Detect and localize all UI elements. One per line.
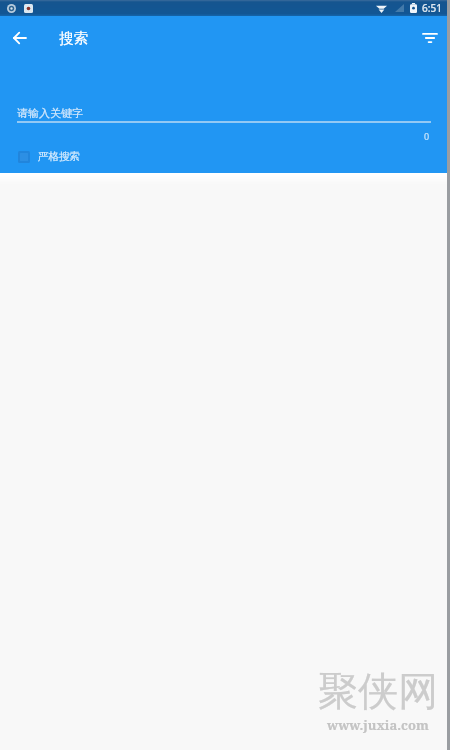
staticText: 请输入关键字: [17, 106, 83, 120]
staticText: 0: [424, 130, 430, 142]
staticText: www.juxia.com: [327, 716, 429, 734]
button[interactable]: 严格搜索: [10, 142, 88, 171]
button[interactable]: Filter: [414, 22, 446, 54]
staticText: 6:51: [422, 1, 442, 15]
button[interactable]: Search keyword input: [17, 94, 431, 123]
staticText: 严格搜索: [38, 150, 80, 163]
staticText: 搜索: [59, 29, 88, 47]
button[interactable]: Back: [2, 21, 36, 55]
staticText: 聚侠网: [318, 666, 438, 716]
